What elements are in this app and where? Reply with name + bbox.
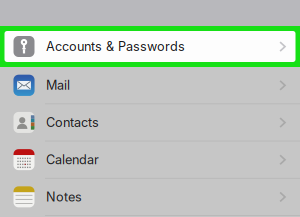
- staticText: Calendar: [46, 152, 99, 167]
- button[interactable]: Contacts: [0, 104, 300, 141]
- button[interactable]: Notes: [0, 179, 300, 215]
- button[interactable]: Accounts & Passwords: [4, 31, 295, 62]
- button[interactable]: Calendar: [0, 141, 300, 178]
- staticText: Accounts & Passwords: [46, 39, 185, 54]
- staticText: Notes: [46, 189, 82, 204]
- staticText: Contacts: [46, 115, 99, 130]
- staticText: Mail: [46, 78, 70, 93]
- button[interactable]: Mail: [0, 67, 300, 103]
